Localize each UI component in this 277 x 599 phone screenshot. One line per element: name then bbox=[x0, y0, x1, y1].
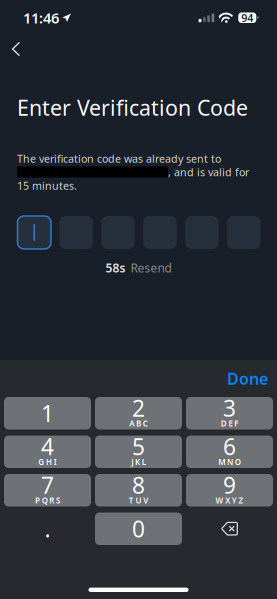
staticText: 7 bbox=[41, 470, 54, 500]
button[interactable]: Done bbox=[215, 360, 277, 397]
staticText: S bbox=[56, 495, 60, 506]
button[interactable]: 3 bbox=[186, 397, 273, 429]
staticText: K bbox=[135, 456, 140, 467]
button[interactable]: Resend bbox=[130, 260, 171, 276]
staticText: R bbox=[49, 495, 54, 506]
staticText: 58s bbox=[105, 260, 125, 276]
staticText: N bbox=[227, 456, 233, 467]
staticText: 4 bbox=[41, 431, 54, 461]
staticText: B bbox=[136, 418, 141, 429]
staticText: O bbox=[235, 456, 241, 467]
staticText: G bbox=[38, 456, 44, 467]
staticText: X bbox=[225, 495, 230, 506]
staticText: 1 bbox=[41, 398, 54, 428]
button[interactable]: 7 bbox=[4, 474, 91, 506]
staticText: U bbox=[135, 495, 141, 506]
button[interactable]: Back bbox=[1, 32, 31, 66]
staticText: Z bbox=[238, 495, 243, 506]
staticText: 15 minutes. bbox=[17, 178, 77, 193]
staticText: 9 bbox=[223, 470, 236, 500]
staticText: V bbox=[143, 495, 148, 506]
staticText: 6 bbox=[223, 431, 236, 461]
staticText: A bbox=[129, 418, 134, 429]
staticText: F bbox=[234, 418, 238, 429]
staticText: P bbox=[35, 495, 40, 506]
staticText: T bbox=[129, 495, 134, 506]
button[interactable]: 9 bbox=[186, 474, 273, 506]
staticText: Enter Verification Code bbox=[17, 93, 248, 122]
staticText: Done bbox=[227, 368, 268, 389]
button[interactable]: 2 bbox=[95, 397, 182, 429]
button[interactable]: 6 bbox=[186, 435, 273, 468]
button[interactable]: 1 bbox=[4, 397, 91, 429]
staticText: W bbox=[215, 495, 223, 506]
staticText: . bbox=[44, 514, 50, 544]
staticText: L bbox=[142, 456, 146, 467]
staticText: Q bbox=[42, 495, 48, 506]
staticText: 8 bbox=[132, 470, 145, 500]
staticText: Y bbox=[232, 495, 237, 506]
button[interactable]: Delete bbox=[186, 512, 273, 545]
staticText: 94 bbox=[241, 11, 253, 25]
staticText: , and is valid for bbox=[168, 165, 249, 179]
staticText: I bbox=[54, 456, 57, 467]
button[interactable]: 0 bbox=[95, 512, 182, 545]
button[interactable]: . bbox=[4, 512, 91, 545]
staticText: M bbox=[218, 456, 225, 467]
staticText: 0 bbox=[132, 514, 145, 544]
staticText: 3 bbox=[223, 393, 236, 423]
staticText: 2 bbox=[132, 393, 145, 423]
staticText: E bbox=[228, 418, 232, 429]
staticText: 11:46 bbox=[23, 8, 59, 27]
button[interactable]: 8 bbox=[95, 474, 182, 506]
staticText: 5 bbox=[132, 431, 145, 461]
button[interactable]: 4 bbox=[4, 435, 91, 468]
staticText: H bbox=[46, 456, 52, 467]
staticText: C bbox=[143, 418, 148, 429]
staticText: J bbox=[131, 456, 133, 467]
staticText: Resend bbox=[130, 260, 171, 276]
button[interactable]: 5 bbox=[95, 435, 182, 468]
staticText: D bbox=[221, 418, 227, 429]
staticText: The verification code was already sent t… bbox=[17, 151, 221, 166]
